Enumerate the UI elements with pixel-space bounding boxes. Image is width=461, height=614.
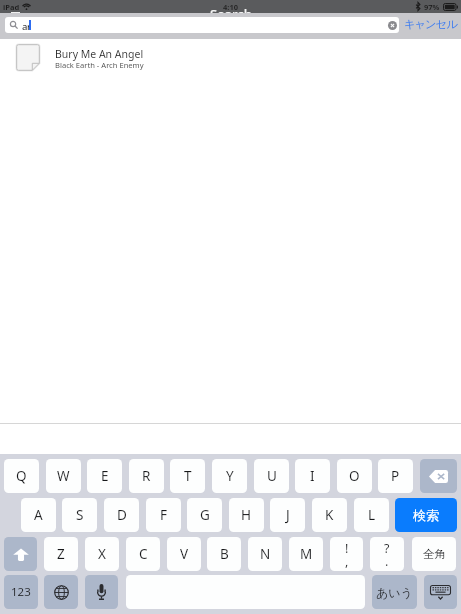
staticText: X (98, 545, 106, 563)
button[interactable]: ar (5, 17, 399, 33)
button[interactable]: あいう (372, 575, 417, 609)
button[interactable]: O (337, 459, 372, 493)
staticText: I (310, 467, 315, 485)
staticText: ! (345, 540, 349, 557)
staticText: iPad (3, 2, 20, 12)
staticText: 97% (424, 2, 440, 12)
button[interactable]: キャンセル (402, 16, 455, 32)
button[interactable]: Bury Me An Angel (0, 39, 461, 78)
button[interactable]: Change keyboard (44, 575, 78, 609)
staticText: G (200, 506, 210, 524)
staticText: D (117, 506, 127, 524)
button[interactable]: B (207, 537, 241, 571)
staticText: R (142, 467, 151, 485)
button[interactable]: Z (44, 537, 78, 571)
staticText: S (76, 506, 84, 524)
button[interactable]: C (126, 537, 160, 571)
button[interactable]: V (167, 537, 201, 571)
button[interactable]: A (21, 498, 56, 532)
button[interactable]: G (187, 498, 222, 532)
button[interactable]: I (295, 459, 330, 493)
staticText: 123 (11, 584, 31, 600)
button[interactable]: S (62, 498, 97, 532)
button[interactable]: L (354, 498, 389, 532)
button[interactable]: K (312, 498, 347, 532)
button[interactable]: Hide keyboard (424, 575, 457, 609)
staticText: あいう (376, 585, 413, 600)
staticText: W (57, 467, 70, 485)
button[interactable]: 123 (4, 575, 38, 609)
staticText: J (286, 506, 290, 524)
button[interactable]: Y (212, 459, 247, 493)
staticText: L (368, 506, 376, 524)
staticText: T (184, 467, 192, 485)
staticText: N (260, 545, 271, 563)
staticText: Bury Me An Angel (55, 47, 144, 61)
staticText: P (391, 467, 400, 485)
button[interactable]: X (85, 537, 119, 571)
staticText: Z (57, 545, 65, 563)
staticText: K (325, 506, 334, 524)
staticText: 4:10 (223, 2, 238, 12)
staticText: Q (16, 467, 27, 485)
button[interactable]: Dictate (85, 575, 118, 609)
button[interactable]: M (289, 537, 323, 571)
button[interactable]: E (87, 459, 122, 493)
button[interactable]: H (229, 498, 264, 532)
button[interactable]: 全角 (412, 537, 456, 571)
staticText: M (300, 545, 313, 563)
button[interactable]: Clear text (385, 17, 399, 33)
button[interactable]: Q (4, 459, 39, 493)
staticText: H (241, 506, 252, 524)
button[interactable]: ? (370, 537, 404, 571)
staticText: . (385, 553, 389, 570)
button[interactable]: ! (330, 537, 363, 571)
staticText: A (34, 506, 43, 524)
button[interactable]: Shift (4, 537, 37, 571)
button[interactable]: N (248, 537, 282, 571)
button[interactable]: W (46, 459, 81, 493)
staticText: O (349, 467, 360, 485)
staticText: 全角 (423, 547, 446, 561)
staticText: B (220, 545, 229, 563)
staticText: 検索 (413, 507, 439, 523)
button[interactable]: R (129, 459, 164, 493)
staticText: , (345, 553, 349, 570)
staticText: U (267, 467, 277, 485)
staticText: V (180, 545, 189, 563)
button[interactable]: Backspace (420, 459, 457, 493)
button[interactable]: D (104, 498, 139, 532)
staticText: キャンセル (404, 17, 457, 31)
staticText: E (101, 467, 109, 485)
staticText: ? (384, 540, 390, 557)
button[interactable]: J (270, 498, 305, 532)
button[interactable]: U (254, 459, 289, 493)
staticText: Y (226, 467, 234, 485)
staticText: F (160, 506, 168, 524)
staticText: Search (210, 5, 252, 13)
button[interactable]: 検索 (395, 498, 457, 532)
button[interactable]: P (378, 459, 413, 493)
button[interactable]: F (146, 498, 181, 532)
button[interactable]: T (170, 459, 205, 493)
staticText: Black Earth - Arch Enemy (55, 60, 144, 70)
staticText: C (139, 545, 148, 563)
staticText: ar (22, 20, 31, 33)
